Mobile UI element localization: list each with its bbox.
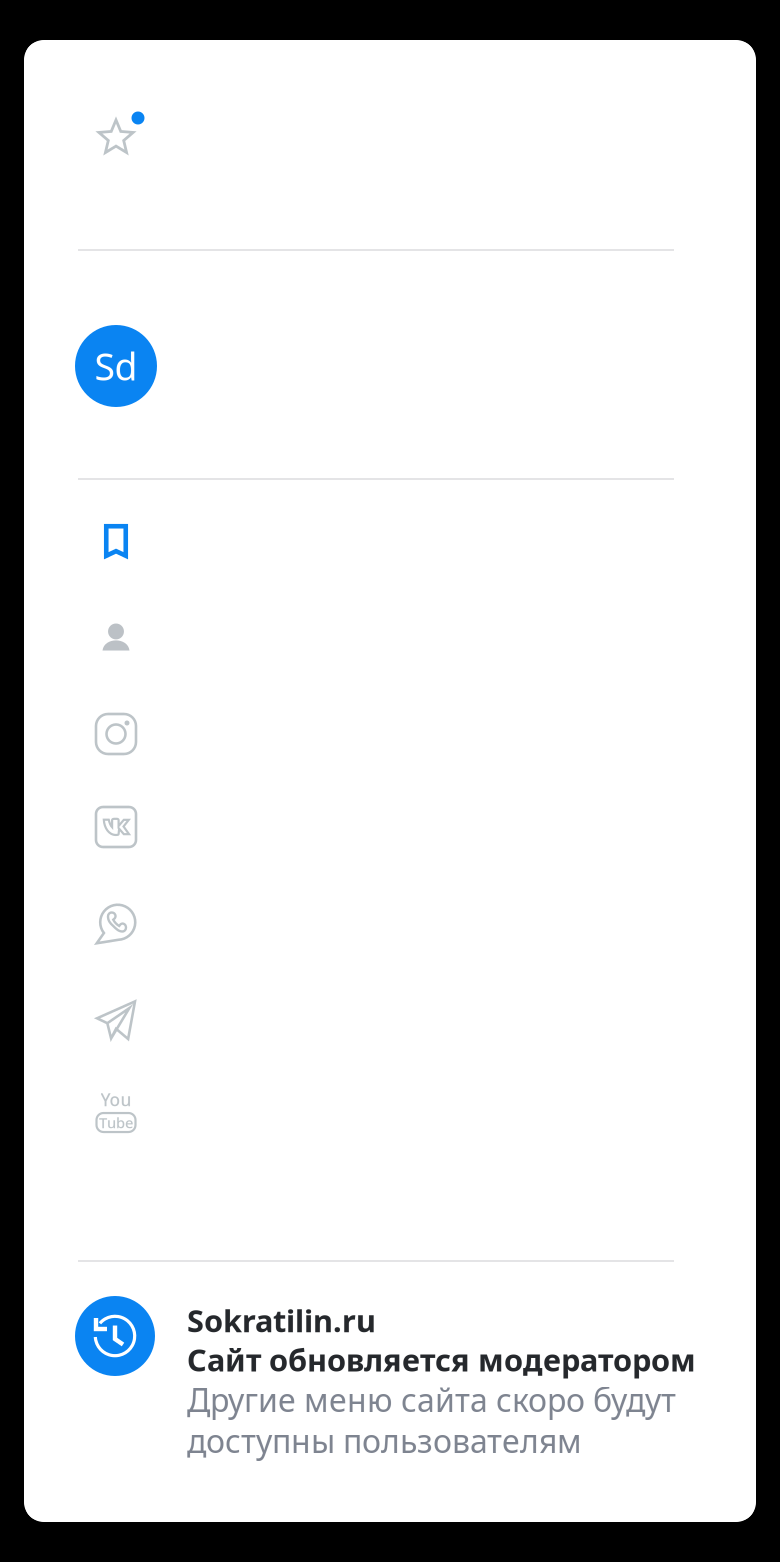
- staticText: Sokratilin.ru: [187, 1300, 376, 1341]
- button[interactable]: YouTube: [70, 1063, 162, 1157]
- button[interactable]: WhatsApp: [70, 877, 162, 971]
- button[interactable]: Telegram: [70, 973, 162, 1067]
- staticText: Tube: [99, 1113, 133, 1132]
- staticText: Другие меню сайта скоро будут: [187, 1378, 676, 1421]
- staticText: доступны пользователям: [187, 1419, 582, 1462]
- staticText: You: [100, 1088, 131, 1111]
- button[interactable]: Sokratilin.ru: [75, 1296, 705, 1462]
- staticText: Сайт обновляется модератором: [187, 1339, 696, 1380]
- button[interactable]: Bookmarks: [70, 494, 162, 588]
- staticText: Sd: [94, 341, 137, 391]
- button[interactable]: Instagram: [70, 687, 162, 781]
- button[interactable]: Account: [70, 590, 162, 684]
- button[interactable]: Sd: [75, 325, 157, 407]
- button[interactable]: Favourites: [70, 90, 162, 184]
- button[interactable]: VKontakte: [70, 780, 162, 874]
